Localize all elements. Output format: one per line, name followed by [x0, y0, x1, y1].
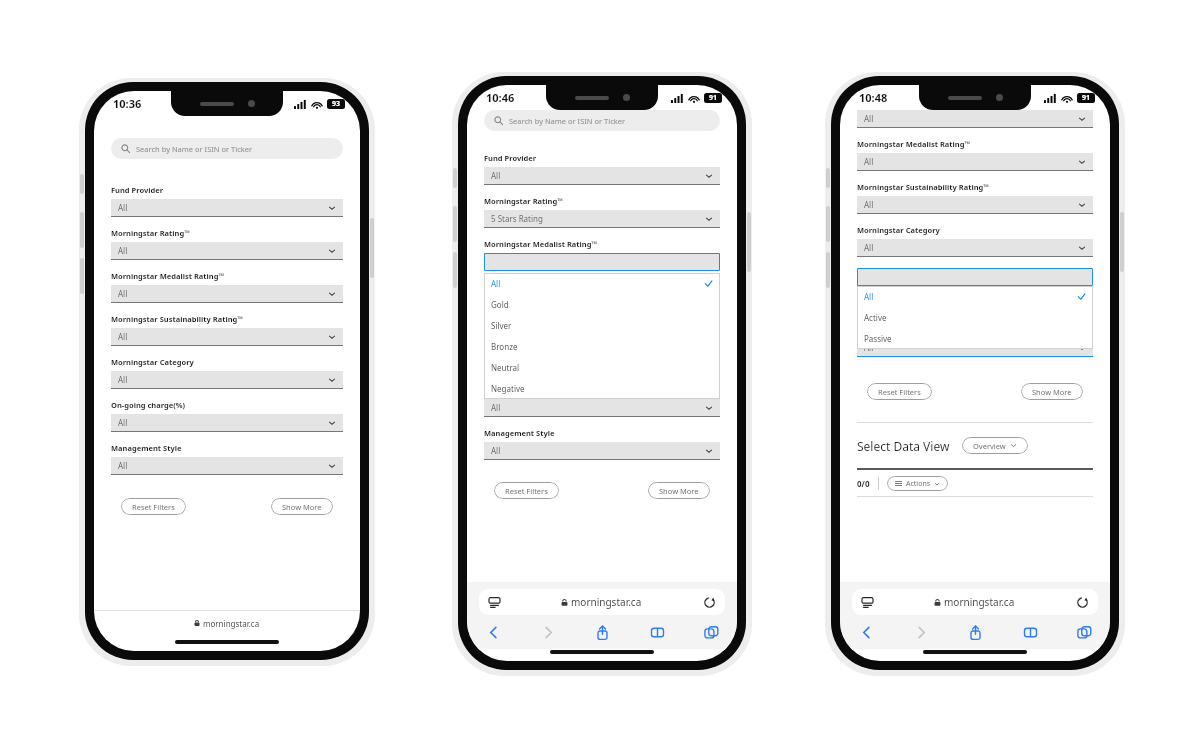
staticText: All: [491, 445, 705, 456]
button[interactable]: All: [111, 328, 343, 345]
button[interactable]: All: [111, 199, 343, 216]
button[interactable]: All: [857, 196, 1093, 213]
staticText: Morningstar Rating™: [111, 228, 190, 238]
button[interactable]: Actions: [887, 476, 948, 491]
other: Reload: [704, 597, 715, 608]
staticText: All: [118, 202, 328, 213]
button[interactable]: All: [857, 110, 1093, 127]
button[interactable]: Active: [857, 307, 1093, 328]
button[interactable]: [484, 253, 720, 271]
button[interactable]: All: [484, 273, 720, 294]
button[interactable]: Reset Filters: [867, 383, 932, 400]
button[interactable]: Show More: [1021, 383, 1083, 400]
staticText: 5 Stars Rating: [491, 213, 705, 224]
button[interactable]: Passive: [857, 328, 1093, 349]
staticText: All: [864, 156, 1078, 167]
staticText: Reset Filters: [878, 387, 921, 397]
staticText: morningstar.ca: [203, 618, 260, 629]
button[interactable]: Tabs: [698, 619, 724, 645]
button[interactable]: Search by Name or ISIN or Ticker: [484, 110, 720, 131]
staticText: 91: [709, 93, 718, 103]
button[interactable]: Tabs: [1071, 619, 1097, 645]
button[interactable]: Neutral: [484, 357, 720, 378]
button[interactable]: Share: [589, 619, 615, 645]
staticText: Select Data View: [857, 438, 950, 454]
button[interactable]: Show More: [271, 498, 333, 515]
staticText: Fund Provider: [484, 153, 537, 163]
staticText: Morningstar Category: [111, 357, 194, 367]
staticText: Reset Filters: [505, 486, 548, 496]
button[interactable]: 5 Stars Rating: [484, 210, 720, 227]
staticText: 10:48: [859, 90, 888, 105]
button[interactable]: Reset Filters: [121, 498, 186, 515]
button[interactable]: Forward: [535, 619, 561, 645]
staticText: All: [118, 288, 328, 299]
staticText: Negative: [491, 383, 713, 394]
other: Reload: [1077, 597, 1088, 608]
other: Reader view: [862, 597, 873, 608]
button[interactable]: Reset Filters: [494, 482, 559, 499]
button[interactable]: All: [857, 239, 1093, 256]
other: Reader view: [489, 597, 500, 608]
button[interactable]: Search by Name or ISIN or Ticker: [111, 138, 343, 159]
staticText: 10:36: [113, 96, 142, 111]
button[interactable]: All: [484, 442, 720, 459]
button[interactable]: [857, 268, 1093, 286]
staticText: All: [118, 331, 328, 342]
staticText: All: [118, 417, 328, 428]
button[interactable]: Negative: [484, 378, 720, 399]
staticText: Passive: [864, 333, 1086, 344]
button[interactable]: Reader view: [479, 589, 725, 615]
staticText: Actions: [906, 479, 931, 489]
button[interactable]: Bookmarks: [1017, 619, 1043, 645]
staticText: morningstar.ca: [571, 595, 642, 609]
button[interactable]: All: [111, 457, 343, 474]
staticText: Show More: [282, 502, 322, 512]
staticText: Gold: [491, 299, 713, 310]
button[interactable]: Back: [480, 619, 506, 645]
staticText: Fund Provider: [111, 185, 164, 195]
staticText: Management Style: [111, 443, 182, 453]
button[interactable]: Silver: [484, 315, 720, 336]
staticText: Bronze: [491, 341, 713, 352]
staticText: Morningstar Sustainability Rating™: [111, 314, 244, 324]
button[interactable]: All: [857, 153, 1093, 170]
button[interactable]: All: [484, 399, 720, 416]
staticText: Silver: [491, 320, 713, 331]
staticText: All: [118, 245, 328, 256]
staticText: All: [864, 242, 1078, 253]
button[interactable]: Reader view: [852, 589, 1098, 615]
button[interactable]: Share: [962, 619, 988, 645]
staticText: Active: [864, 312, 1086, 323]
staticText: 0/0: [857, 478, 870, 489]
staticText: On-going charge(%): [111, 400, 186, 410]
button[interactable]: Bookmarks: [644, 619, 670, 645]
staticText: Morningstar Medalist Rating™: [111, 271, 225, 281]
staticText: All: [491, 278, 704, 289]
staticText: Search by Name or ISIN or Ticker: [509, 116, 626, 126]
button[interactable]: All: [857, 286, 1093, 307]
staticText: 91: [1082, 93, 1091, 103]
staticText: Morningstar Medalist Rating™: [857, 139, 971, 149]
button[interactable]: morningstar.ca: [94, 611, 360, 635]
button[interactable]: All: [484, 167, 720, 184]
button[interactable]: Overview: [962, 437, 1028, 454]
staticText: morningstar.ca: [944, 595, 1015, 609]
button[interactable]: All: [111, 285, 343, 302]
button[interactable]: All: [111, 242, 343, 259]
button[interactable]: Back: [853, 619, 879, 645]
button[interactable]: Bronze: [484, 336, 720, 357]
button[interactable]: All: [111, 414, 343, 431]
button[interactable]: All: [857, 339, 1093, 356]
button[interactable]: All: [111, 371, 343, 388]
button[interactable]: Show More: [648, 482, 710, 499]
staticText: Show More: [1032, 387, 1072, 397]
staticText: Morningstar Medalist Rating™: [484, 239, 598, 249]
staticText: All: [118, 374, 328, 385]
button[interactable]: Gold: [484, 294, 720, 315]
staticText: Show More: [659, 486, 699, 496]
staticText: All: [864, 291, 1077, 302]
button[interactable]: Forward: [908, 619, 934, 645]
staticText: All: [118, 460, 328, 471]
staticText: 93: [332, 99, 341, 109]
